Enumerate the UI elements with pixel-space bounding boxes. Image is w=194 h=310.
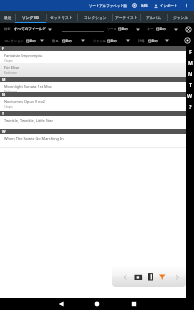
staticText: N bbox=[188, 70, 193, 77]
button[interactable]: Fantaisie Impromptu bbox=[0, 51, 194, 63]
staticText: 評価 bbox=[138, 39, 145, 43]
button[interactable]: セットリスト bbox=[46, 11, 77, 23]
button[interactable]: ソートアルファベット順 bbox=[89, 4, 128, 8]
button[interactable]: すべてのフィールド bbox=[14, 27, 47, 31]
staticText: キー bbox=[147, 27, 154, 31]
staticText: M bbox=[188, 59, 193, 66]
button[interactable]: ジャンル bbox=[167, 11, 194, 23]
button[interactable]: ソング (6) bbox=[15, 11, 46, 23]
button[interactable]: コレクション bbox=[77, 11, 113, 23]
button[interactable]: Screenshot bbox=[134, 273, 143, 282]
button[interactable]: Moonlight Sonata 1st Mov bbox=[0, 82, 194, 92]
staticText: 任意の bbox=[107, 39, 117, 43]
button[interactable]: 任意の bbox=[156, 27, 166, 31]
staticText: ソング (6) bbox=[22, 15, 39, 20]
staticText: インポート bbox=[160, 4, 178, 8]
staticText: コレクション bbox=[4, 39, 24, 43]
button[interactable]: インポート bbox=[154, 4, 178, 8]
staticText: When The Saints Go Marching In bbox=[4, 136, 64, 141]
staticText: W bbox=[2, 129, 6, 134]
button[interactable]: N bbox=[186, 68, 194, 79]
staticText: Nocturnes Opus 9 no2 bbox=[4, 99, 45, 104]
staticText: Für Elise bbox=[4, 65, 20, 70]
staticText: 任意の bbox=[26, 39, 36, 43]
button[interactable]: Reset filters bbox=[184, 37, 191, 44]
button[interactable]: 削除 bbox=[141, 4, 148, 8]
button[interactable]: T bbox=[186, 79, 194, 90]
staticText: 任意の bbox=[156, 27, 166, 31]
button[interactable]: M bbox=[186, 57, 194, 68]
button[interactable]: Next bbox=[173, 273, 182, 282]
staticText: 削除 bbox=[141, 4, 148, 8]
staticText: ジャンル bbox=[93, 39, 107, 43]
staticText: N bbox=[2, 92, 5, 97]
staticText: コレクション bbox=[84, 15, 107, 20]
staticText: ソートアルファベット順 bbox=[89, 4, 128, 8]
staticText: Moonlight Sonata 1st Mov bbox=[4, 84, 52, 89]
staticText: M bbox=[2, 77, 6, 82]
staticText: F bbox=[2, 46, 4, 51]
staticText: アーティスト bbox=[115, 15, 138, 20]
button[interactable]: 任意の bbox=[148, 39, 158, 43]
staticText: Beethoven bbox=[4, 71, 18, 75]
button[interactable]: 任意の bbox=[118, 27, 128, 31]
button[interactable]: Nocturnes Opus 9 no2 bbox=[0, 97, 194, 111]
staticText: ? bbox=[189, 103, 192, 110]
staticText: アルバム bbox=[146, 15, 162, 20]
button[interactable]: Clear filters bbox=[185, 26, 192, 33]
staticText: 任意の bbox=[62, 39, 72, 43]
button[interactable]: 最近 bbox=[0, 11, 15, 23]
button[interactable]: Back bbox=[55, 298, 67, 310]
button[interactable]: More options bbox=[184, 3, 189, 8]
staticText: 任意の bbox=[148, 39, 158, 43]
staticText: Beethoven bbox=[4, 90, 18, 92]
button[interactable]: Previous bbox=[121, 273, 130, 282]
staticText: すべてのフィールド bbox=[14, 27, 47, 31]
button[interactable]: Home bbox=[91, 298, 103, 310]
button[interactable]: Für Elise bbox=[0, 63, 194, 77]
staticText: 難易 bbox=[52, 39, 59, 43]
button[interactable]: Select all bbox=[132, 3, 137, 8]
staticText: T bbox=[189, 81, 192, 88]
button[interactable]: When The Saints Go Marching In bbox=[0, 134, 194, 147]
staticText: Twinkle, Twinkle, Little Star bbox=[4, 118, 54, 123]
button[interactable]: Filter bbox=[158, 272, 167, 281]
button[interactable]: Twinkle, Twinkle, Little Star bbox=[0, 116, 194, 129]
staticText: W bbox=[187, 92, 193, 99]
button[interactable]: 任意の bbox=[107, 39, 117, 43]
button[interactable]: Battery bbox=[147, 272, 156, 281]
button[interactable]: アルバム bbox=[140, 11, 167, 23]
staticText: ジャンル bbox=[173, 15, 189, 20]
button[interactable]: Recents bbox=[128, 298, 140, 310]
staticText: T bbox=[2, 111, 5, 116]
staticText: 最近 bbox=[4, 15, 12, 20]
staticText: Chopin bbox=[4, 59, 13, 63]
button[interactable]: 任意の bbox=[62, 39, 72, 43]
staticText: Chopin bbox=[4, 105, 13, 109]
button[interactable]: ? bbox=[186, 101, 194, 112]
staticText: ソース bbox=[107, 27, 117, 31]
button[interactable]: F bbox=[186, 46, 194, 57]
button[interactable]: アーティスト bbox=[112, 11, 140, 23]
staticText: F bbox=[189, 48, 192, 55]
staticText: セットリスト bbox=[50, 15, 73, 20]
button[interactable]: 任意の bbox=[26, 39, 36, 43]
staticText: Fantaisie Impromptu bbox=[4, 53, 43, 58]
staticText: 任意の bbox=[118, 27, 128, 31]
button[interactable]: W bbox=[186, 90, 194, 101]
staticText: 検索 bbox=[4, 27, 11, 31]
